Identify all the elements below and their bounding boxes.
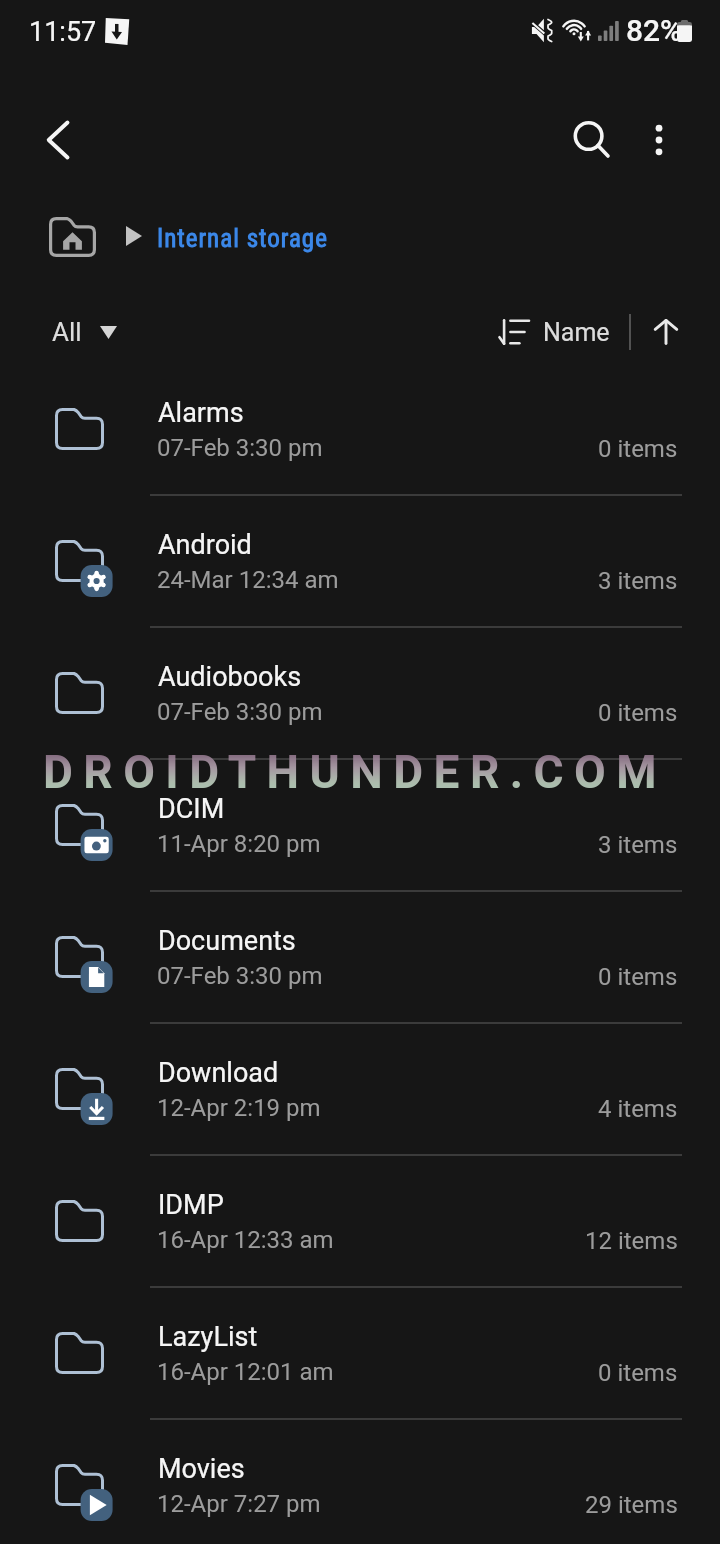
staticText: DROIDTHUNDER.COM bbox=[43, 745, 668, 799]
staticText: DCIM bbox=[158, 793, 225, 825]
button[interactable]: Search bbox=[552, 100, 624, 172]
button[interactable]: Alarms bbox=[0, 364, 720, 496]
button[interactable]: Download bbox=[0, 1024, 720, 1156]
button[interactable]: Android bbox=[0, 496, 720, 628]
staticText: 12-Apr 7:27 pm bbox=[157, 1490, 321, 1518]
staticText: Documents bbox=[158, 925, 296, 957]
staticText: All bbox=[52, 317, 82, 347]
staticText: Alarms bbox=[158, 397, 244, 429]
staticText: 12 items bbox=[585, 1227, 678, 1255]
button[interactable]: IDMP bbox=[0, 1156, 720, 1288]
staticText: 3 items bbox=[598, 567, 678, 595]
staticText: 07-Feb 3:30 pm bbox=[157, 962, 323, 990]
button[interactable]: DCIM bbox=[0, 760, 720, 892]
staticText: Download bbox=[158, 1057, 279, 1089]
staticText: 16-Apr 12:33 am bbox=[157, 1226, 334, 1254]
staticText: 07-Feb 3:30 pm bbox=[157, 434, 323, 462]
staticText: Name bbox=[543, 318, 610, 347]
staticText: Internal storage bbox=[157, 224, 328, 253]
staticText: 3 items bbox=[598, 831, 678, 859]
staticText: 07-Feb 3:30 pm bbox=[157, 698, 323, 726]
staticText: Android bbox=[158, 529, 252, 561]
button[interactable]: LazyList bbox=[0, 1288, 720, 1420]
staticText: LazyList bbox=[158, 1321, 258, 1353]
staticText: 11:57 bbox=[29, 16, 97, 48]
staticText: 16-Apr 12:01 am bbox=[157, 1358, 334, 1386]
button[interactable]: Internal storage home bbox=[43, 210, 107, 264]
button[interactable]: Documents bbox=[0, 892, 720, 1024]
staticText: 24-Mar 12:34 am bbox=[157, 566, 339, 594]
staticText: IDMP bbox=[158, 1189, 224, 1221]
staticText: Audiobooks bbox=[158, 661, 302, 693]
button[interactable]: Audiobooks bbox=[0, 628, 720, 760]
staticText: 0 items bbox=[598, 699, 678, 727]
button[interactable]: Back bbox=[22, 104, 94, 176]
staticText: 82% bbox=[626, 13, 683, 48]
button[interactable]: Name bbox=[499, 308, 610, 356]
staticText: 29 items bbox=[585, 1491, 678, 1519]
staticText: 12-Apr 2:19 pm bbox=[157, 1094, 321, 1122]
button[interactable]: All bbox=[40, 308, 129, 356]
button[interactable]: Internal storage bbox=[157, 224, 328, 253]
staticText: Movies bbox=[158, 1453, 245, 1485]
staticText: 0 items bbox=[598, 963, 678, 991]
staticText: 11-Apr 8:20 pm bbox=[157, 830, 321, 858]
staticText: 0 items bbox=[598, 1359, 678, 1387]
staticText: 0 items bbox=[598, 435, 678, 463]
button[interactable]: Sort ascending bbox=[640, 306, 692, 358]
button[interactable]: More options bbox=[623, 104, 695, 176]
staticText: 4 items bbox=[598, 1095, 678, 1123]
button[interactable]: Movies bbox=[0, 1420, 720, 1544]
